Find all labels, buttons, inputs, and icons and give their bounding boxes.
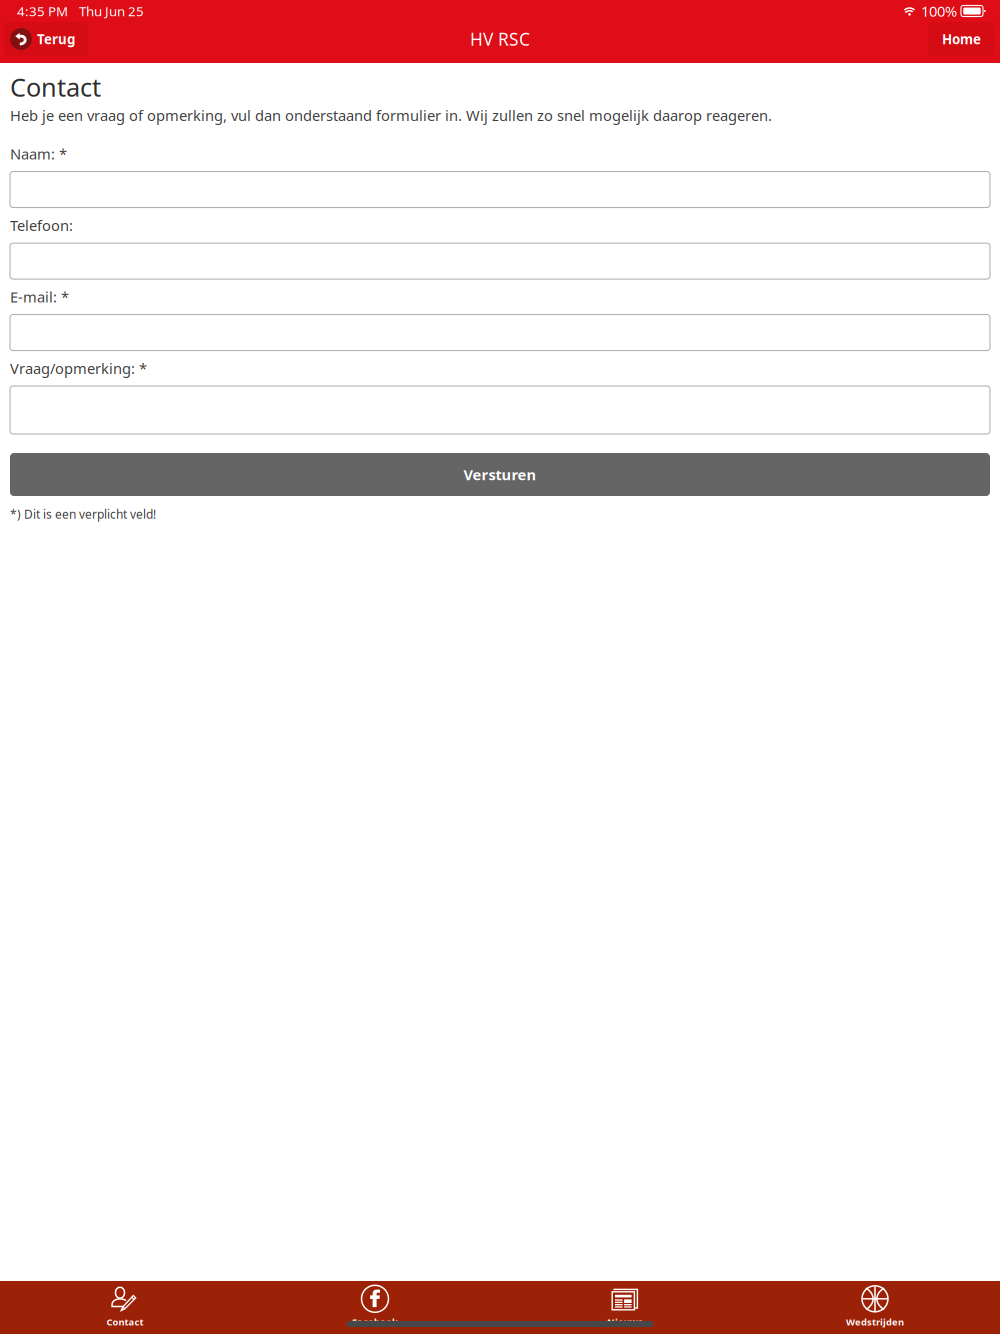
staticText: Contact xyxy=(10,70,101,104)
button[interactable]: Contact xyxy=(0,1279,250,1334)
staticText: Home xyxy=(942,30,981,48)
staticText: Contact xyxy=(106,1316,143,1328)
staticText: 4:35 PM xyxy=(17,2,68,20)
staticText: 100% xyxy=(921,1,957,21)
button[interactable]: Wedstrijden xyxy=(750,1279,1000,1334)
staticText: Facebook xyxy=(352,1316,398,1328)
staticText: Telefoon: xyxy=(10,216,73,235)
staticText: Nieuws xyxy=(607,1316,643,1328)
staticText: Naam: * xyxy=(10,144,67,164)
button[interactable]: Home xyxy=(928,22,995,56)
staticText: Versturen xyxy=(463,465,536,484)
staticText: Vraag/opmerking: * xyxy=(10,359,147,378)
button[interactable]: Facebook xyxy=(250,1279,500,1334)
staticText: Heb je een vraag of opmerking, vul dan o… xyxy=(10,106,772,125)
button[interactable]: Nieuws xyxy=(500,1279,750,1334)
staticText: *) Dit is een verplicht veld! xyxy=(10,506,156,522)
staticText: E-mail: * xyxy=(10,287,69,307)
staticText: Wedstrijden xyxy=(846,1316,904,1328)
button[interactable]: Terug xyxy=(4,22,88,56)
button[interactable]: Versturen xyxy=(10,453,990,496)
staticText: Terug xyxy=(37,30,75,48)
staticText: HV RSC xyxy=(470,27,530,50)
staticText: Thu Jun 25 xyxy=(79,2,144,20)
